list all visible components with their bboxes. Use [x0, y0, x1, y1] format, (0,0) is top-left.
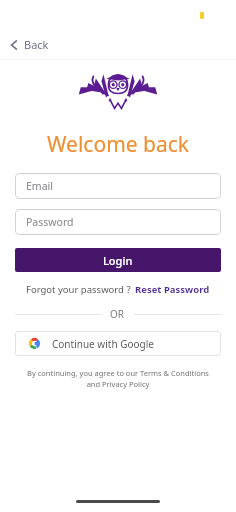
- button[interactable]: Back: [4, 33, 53, 56]
- staticText: By continuing, you agree to our Terms & …: [20, 368, 216, 389]
- staticText: Back: [24, 37, 49, 52]
- staticText: Login: [103, 253, 133, 268]
- staticText: Welcome back: [47, 130, 190, 159]
- button[interactable]: Password: [15, 209, 221, 235]
- other: App logo: [90, 68, 146, 112]
- staticText: Continue with Google: [52, 337, 154, 351]
- button[interactable]: Email: [15, 173, 221, 199]
- staticText: OR: [110, 307, 125, 321]
- staticText: Email: [26, 179, 53, 193]
- button[interactable]: Login: [15, 248, 221, 272]
- button[interactable]: Continue with Google: [15, 331, 221, 356]
- staticText: Reset Password: [135, 283, 210, 296]
- button[interactable]: Reset Password: [135, 283, 210, 296]
- staticText: Password: [26, 215, 74, 229]
- staticText: Forgot your password ?: [26, 283, 131, 296]
